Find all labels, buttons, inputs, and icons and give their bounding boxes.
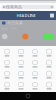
button[interactable]: Shortcut [15, 80, 27, 90]
staticText: HEADLINE [16, 13, 35, 18]
button[interactable]: Shortcut [29, 69, 41, 79]
button[interactable]: 今日头条 [0, 20, 56, 26]
button[interactable]: Shortcut [1, 80, 13, 90]
staticText: 今日头条 [7, 20, 23, 25]
button[interactable]: Search [1, 5, 54, 9]
button[interactable]: Shortcut [43, 69, 55, 79]
button[interactable]: Shortcut [29, 47, 41, 57]
button[interactable]: Shortcut [15, 58, 27, 68]
button[interactable]: Shortcut [29, 58, 41, 68]
button[interactable]: Shortcut [15, 69, 27, 79]
button[interactable]: Shortcut [43, 58, 55, 68]
button[interactable]: Shortcut [1, 69, 13, 79]
button[interactable]: Shortcut [1, 58, 13, 68]
button[interactable]: Shortcut [15, 47, 27, 57]
button[interactable]: Shortcut [1, 47, 13, 57]
button[interactable]: Shortcut [43, 47, 55, 57]
staticText: 搜索商品 [6, 4, 22, 9]
button[interactable]: Shortcut [43, 80, 55, 90]
button[interactable]: Shortcut [29, 80, 41, 90]
